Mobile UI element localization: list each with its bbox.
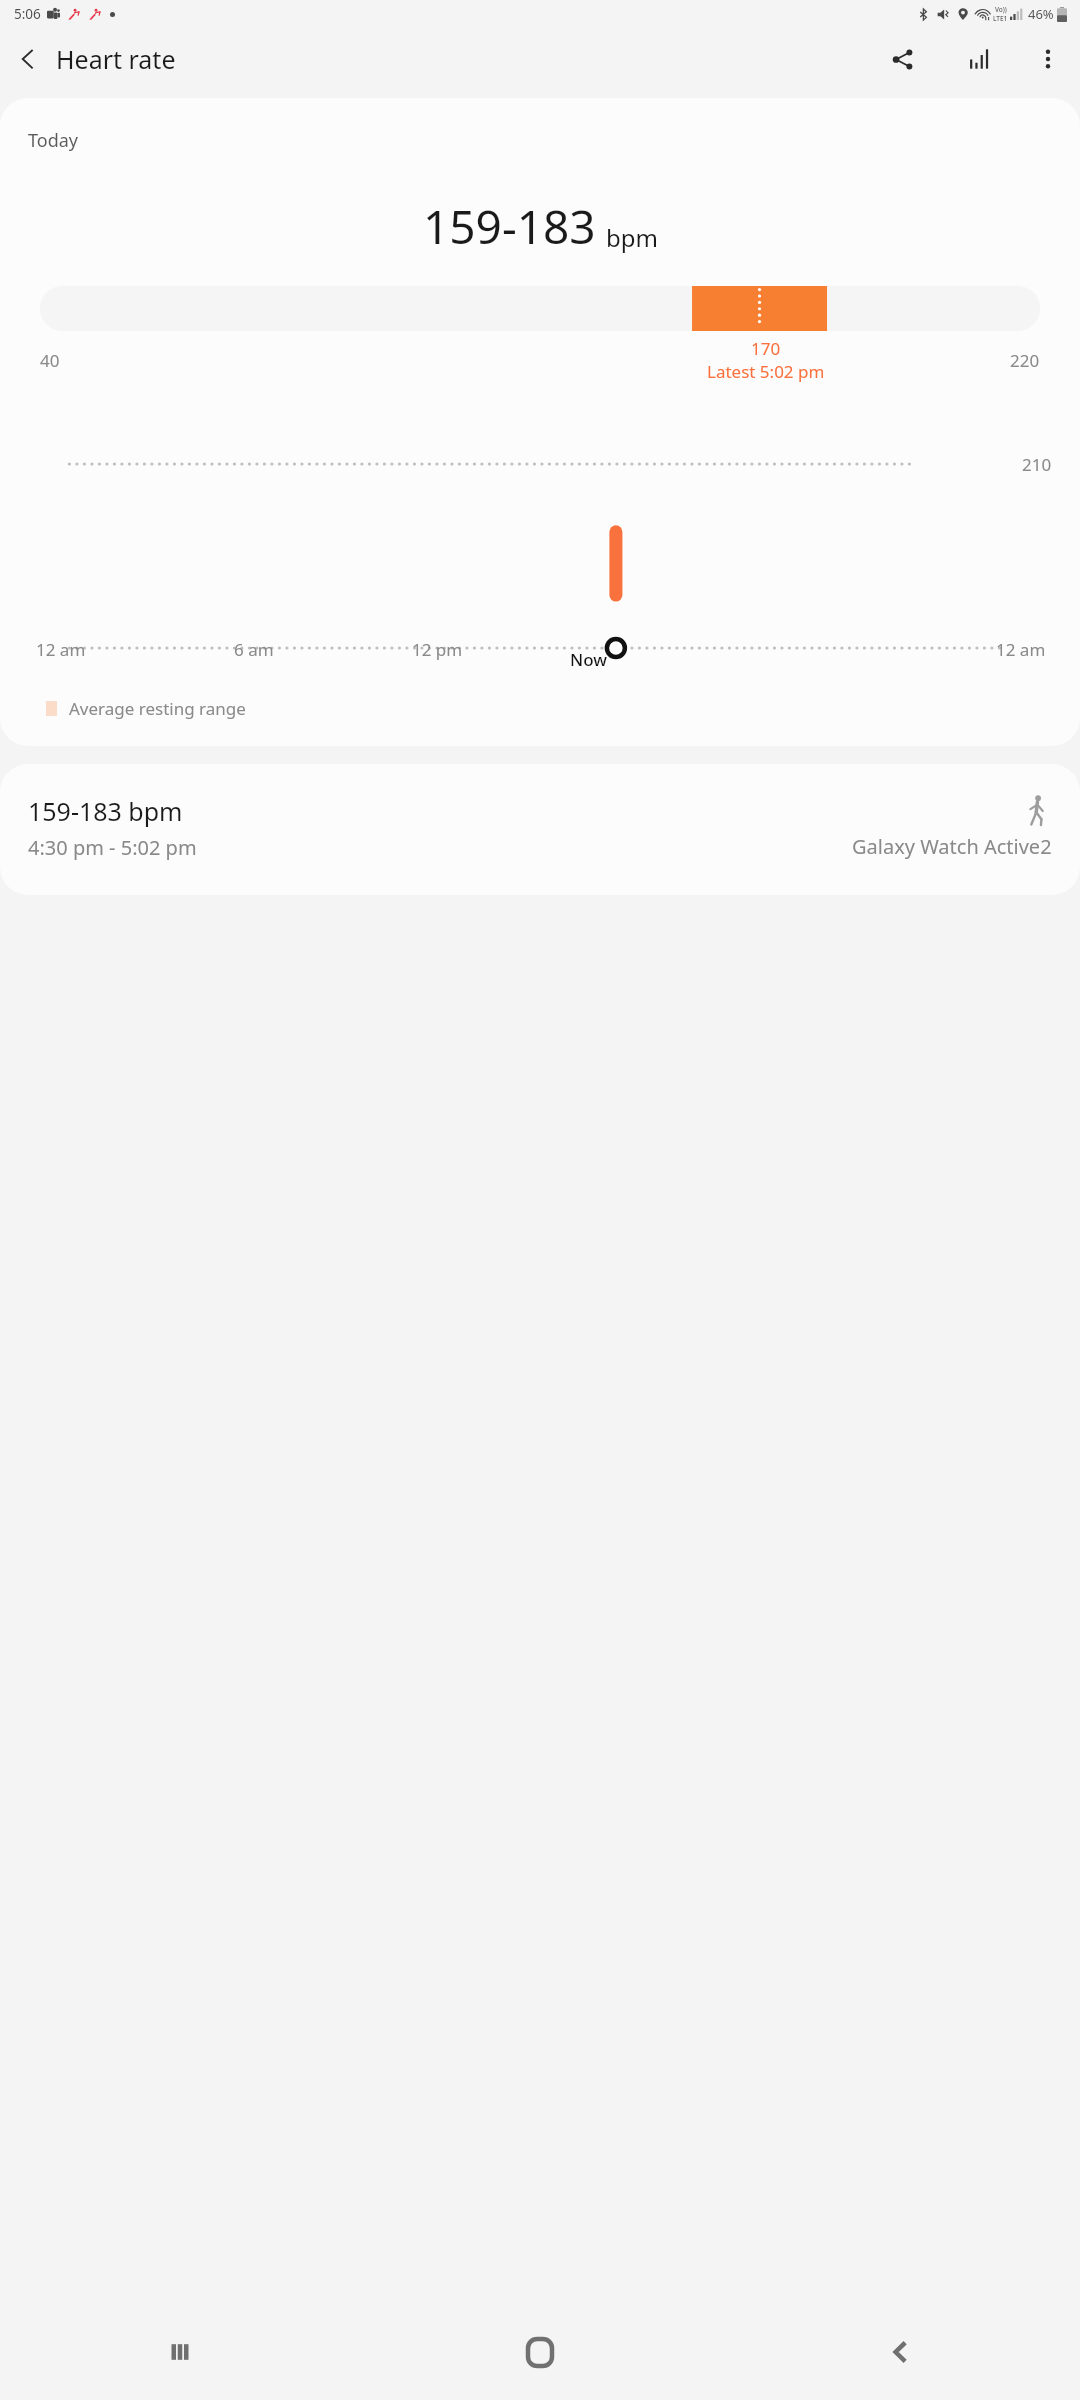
button[interactable]: More options xyxy=(1022,33,1074,85)
button[interactable]: Home xyxy=(360,2304,720,2400)
staticText: 159-183 bpm xyxy=(28,794,183,828)
staticText: 46% xyxy=(1028,5,1054,23)
staticText: Now xyxy=(570,648,607,671)
staticText: 12 am xyxy=(996,638,1046,661)
staticText: 12 pm xyxy=(412,638,463,661)
staticText: 6 am xyxy=(234,638,274,661)
staticText: bpm xyxy=(606,221,658,254)
staticText: 170 xyxy=(751,337,781,360)
staticText: Average resting range xyxy=(69,697,246,720)
staticText: 220 xyxy=(1010,349,1040,372)
button[interactable]: Back xyxy=(0,31,56,87)
staticText: 5:06 xyxy=(14,5,41,23)
staticText: LTE1 xyxy=(993,14,1008,23)
staticText: 12 am xyxy=(36,638,86,661)
staticText: 210 xyxy=(1022,453,1052,476)
staticText: 159-183 xyxy=(423,195,596,258)
button[interactable]: Trends xyxy=(952,33,1004,85)
staticText: Vo)) xyxy=(995,5,1007,14)
staticText: 4:30 pm - 5:02 pm xyxy=(28,834,197,861)
button[interactable]: Recent apps xyxy=(0,2304,360,2400)
button[interactable]: Share xyxy=(876,33,928,85)
button[interactable]: Today xyxy=(0,98,1080,746)
button[interactable]: 159-183 bpm xyxy=(0,764,1080,895)
staticText: Heart rate xyxy=(56,42,176,76)
button[interactable]: Back xyxy=(720,2304,1080,2400)
staticText: Today xyxy=(28,128,78,153)
staticText: Galaxy Watch Active2 xyxy=(852,833,1052,860)
staticText: Latest 5:02 pm xyxy=(707,360,825,383)
staticText: 40 xyxy=(40,349,60,372)
